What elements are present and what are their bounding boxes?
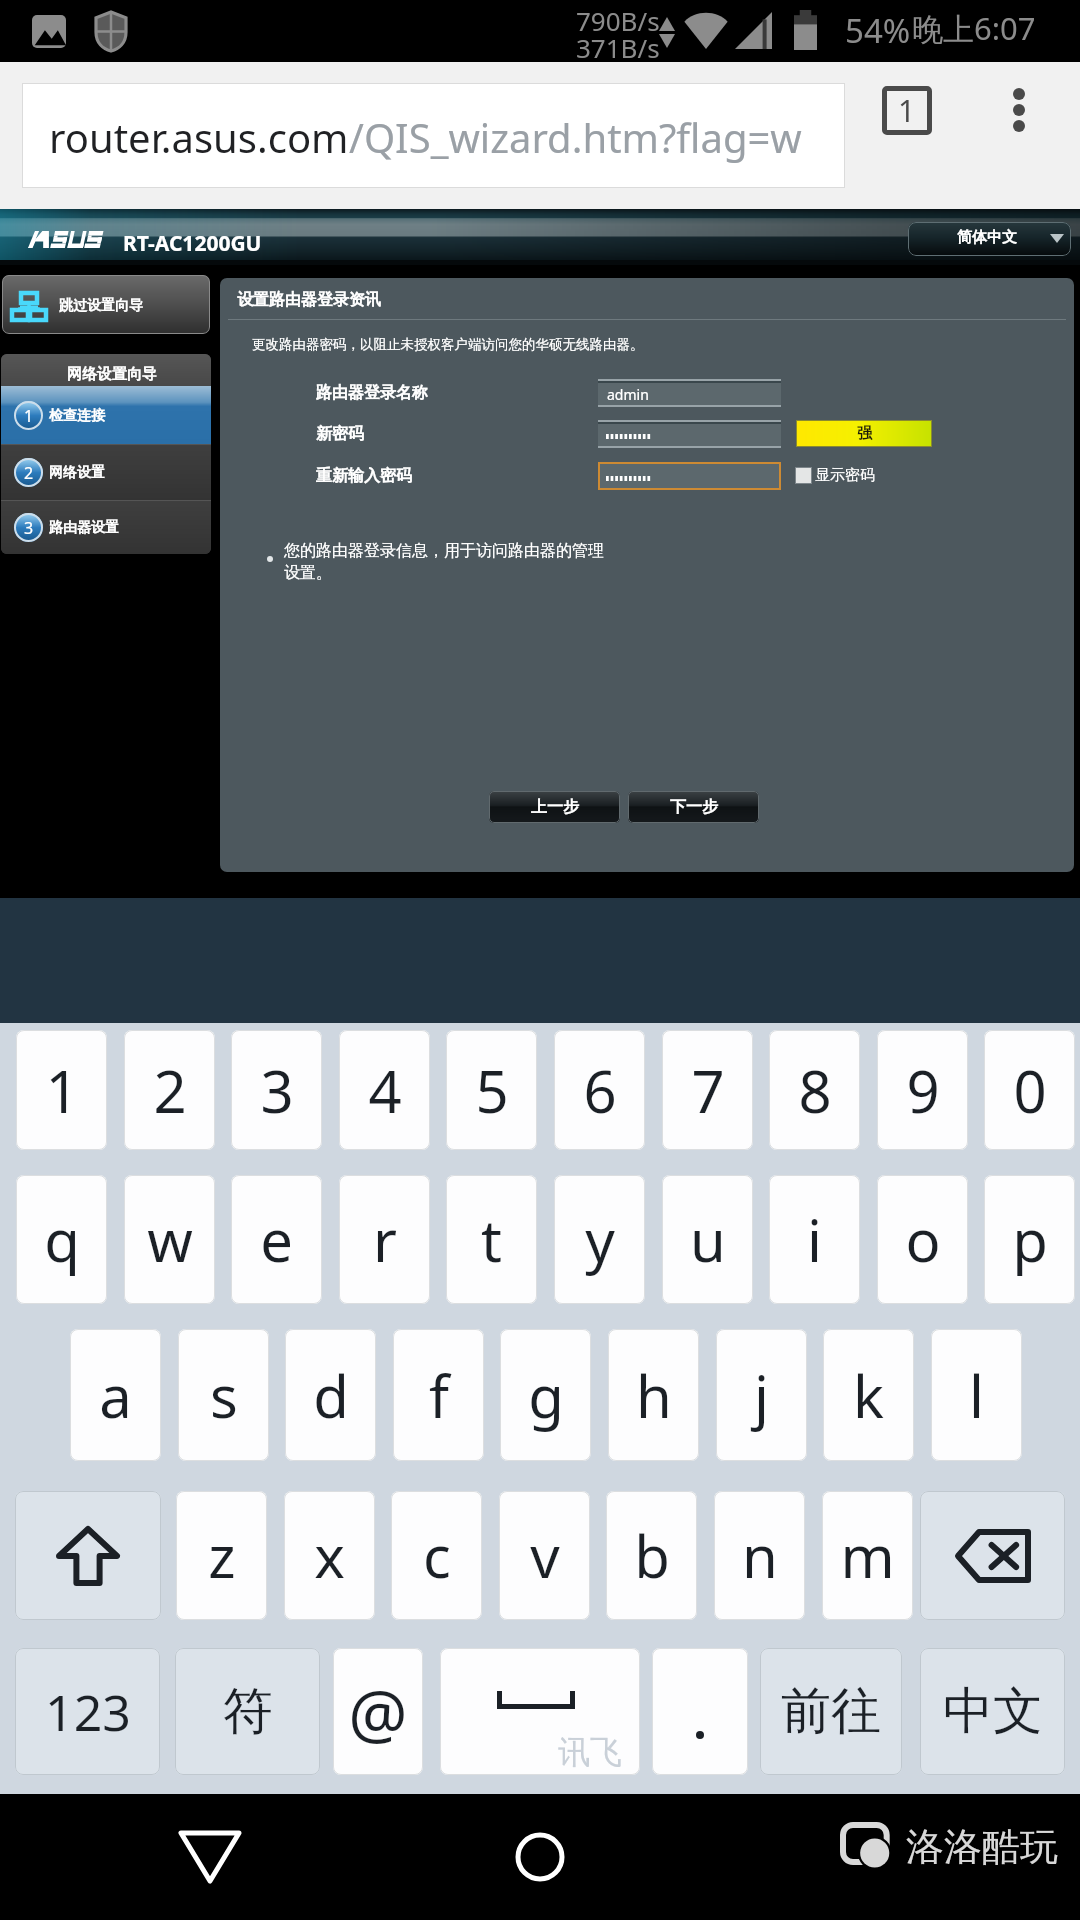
button[interactable]: 2 [124,1030,215,1150]
button[interactable]: 7 [662,1030,753,1150]
button[interactable]: 显示密码 [795,466,875,485]
staticText: 更改路由器密码，以阻止未授权客户端访问您的华硕无线路由器。 [252,336,644,353]
staticText: 123 [45,1678,131,1746]
button[interactable]: n [714,1491,805,1620]
staticText: @ [348,1667,408,1757]
button[interactable]: 跳过设置向导 [2,275,210,334]
button[interactable]: 123 [15,1648,160,1775]
button[interactable]: s [178,1329,269,1461]
button[interactable]: h [608,1329,699,1461]
staticText: s [210,1356,238,1435]
button[interactable]: Home [490,1814,590,1900]
button[interactable]: f [393,1329,484,1461]
button[interactable]: r [339,1175,430,1304]
staticText: router.asus.com [49,110,349,164]
button[interactable]: router.asus.com [22,83,845,188]
button[interactable]: 2 [1,444,211,500]
button[interactable]: 上一步 [489,791,620,823]
staticText: 371B/s [576,30,660,65]
staticText: c [423,1516,451,1595]
staticText: v [530,1516,560,1595]
button[interactable]: l [931,1329,1022,1461]
button[interactable] [652,1648,748,1775]
staticText: 路由器登录名称 [316,383,428,403]
staticText: r [373,1200,397,1279]
staticText: 强 [857,424,872,443]
staticText: 3 [24,517,34,539]
button[interactable]: 1 [1,386,211,444]
button[interactable] [598,420,781,448]
button[interactable]: 4 [339,1030,430,1150]
staticText: b [634,1516,670,1595]
staticText: g [528,1356,564,1435]
staticText: 54% [845,8,911,53]
staticText: u [690,1200,726,1279]
button[interactable]: 前往 [760,1648,902,1775]
button[interactable]: g [500,1329,591,1461]
button[interactable]: a [70,1329,161,1461]
staticText: /QIS_wizard.htm?flag=w [349,110,802,164]
button[interactable]: Tabs [871,74,943,146]
button[interactable]: 5 [446,1030,537,1150]
button[interactable]: m [822,1491,913,1620]
staticText: 检查连接 [49,407,105,425]
staticText: 洛洛酷玩 [906,1823,1058,1871]
button[interactable]: i [769,1175,860,1304]
staticText: f [429,1356,449,1435]
button[interactable]: k [823,1329,914,1461]
button[interactable]: b [606,1491,697,1620]
button[interactable]: Backspace [920,1491,1065,1620]
button[interactable]: t [446,1175,537,1304]
button[interactable]: o [877,1175,968,1304]
button[interactable]: w [124,1175,215,1304]
button[interactable]: 9 [877,1030,968,1150]
button[interactable]: 6 [554,1030,645,1150]
staticText: a [99,1356,132,1435]
staticText: 新密码 [316,424,364,444]
staticText: 跳过设置向导 [59,297,143,315]
button[interactable]: v [499,1491,590,1620]
button[interactable]: Back [160,1814,260,1900]
button[interactable]: More options [983,74,1055,146]
button[interactable]: y [554,1175,645,1304]
staticText: d [313,1356,349,1435]
button[interactable]: 1 [16,1030,107,1150]
staticText: 网络设置 [49,464,105,482]
button[interactable]: u [662,1175,753,1304]
button[interactable]: p [984,1175,1075,1304]
button[interactable]: 8 [769,1030,860,1150]
staticText: 下一步 [670,797,718,817]
staticText: y [585,1200,615,1279]
button[interactable]: j [716,1329,807,1461]
button[interactable]: d [285,1329,376,1461]
button[interactable] [598,462,781,490]
staticText: z [208,1516,236,1595]
staticText: h [636,1356,672,1435]
staticText: 路由器设置 [49,519,119,537]
staticText: m [840,1516,895,1595]
button[interactable]: q [16,1175,107,1304]
staticText: 2 [153,1051,187,1130]
button[interactable]: x [284,1491,375,1620]
button[interactable]: e [231,1175,322,1304]
button[interactable]: Space [440,1648,640,1775]
button[interactable]: admin [598,379,781,407]
staticText: p [1012,1200,1048,1279]
button[interactable]: 3 [1,500,211,554]
staticText: 您的路由器登录信息，用于访问路由器的管理 设置。 [284,541,604,583]
staticText: 3 [260,1051,294,1130]
staticText: t [481,1200,502,1279]
button[interactable]: @ [333,1648,423,1775]
staticText: 1 [24,405,34,427]
button[interactable]: Shift [15,1491,161,1620]
button[interactable]: c [391,1491,482,1620]
button[interactable]: z [176,1491,267,1620]
button[interactable]: 3 [231,1030,322,1150]
staticText: 重新输入密码 [316,466,412,486]
staticText: 中文 [943,1680,1043,1743]
button[interactable]: 下一步 [628,791,759,823]
button[interactable]: 简体中文 [908,222,1071,256]
button[interactable]: 符 [175,1648,320,1775]
button[interactable]: 中文 [920,1648,1065,1775]
button[interactable]: 0 [984,1030,1075,1150]
